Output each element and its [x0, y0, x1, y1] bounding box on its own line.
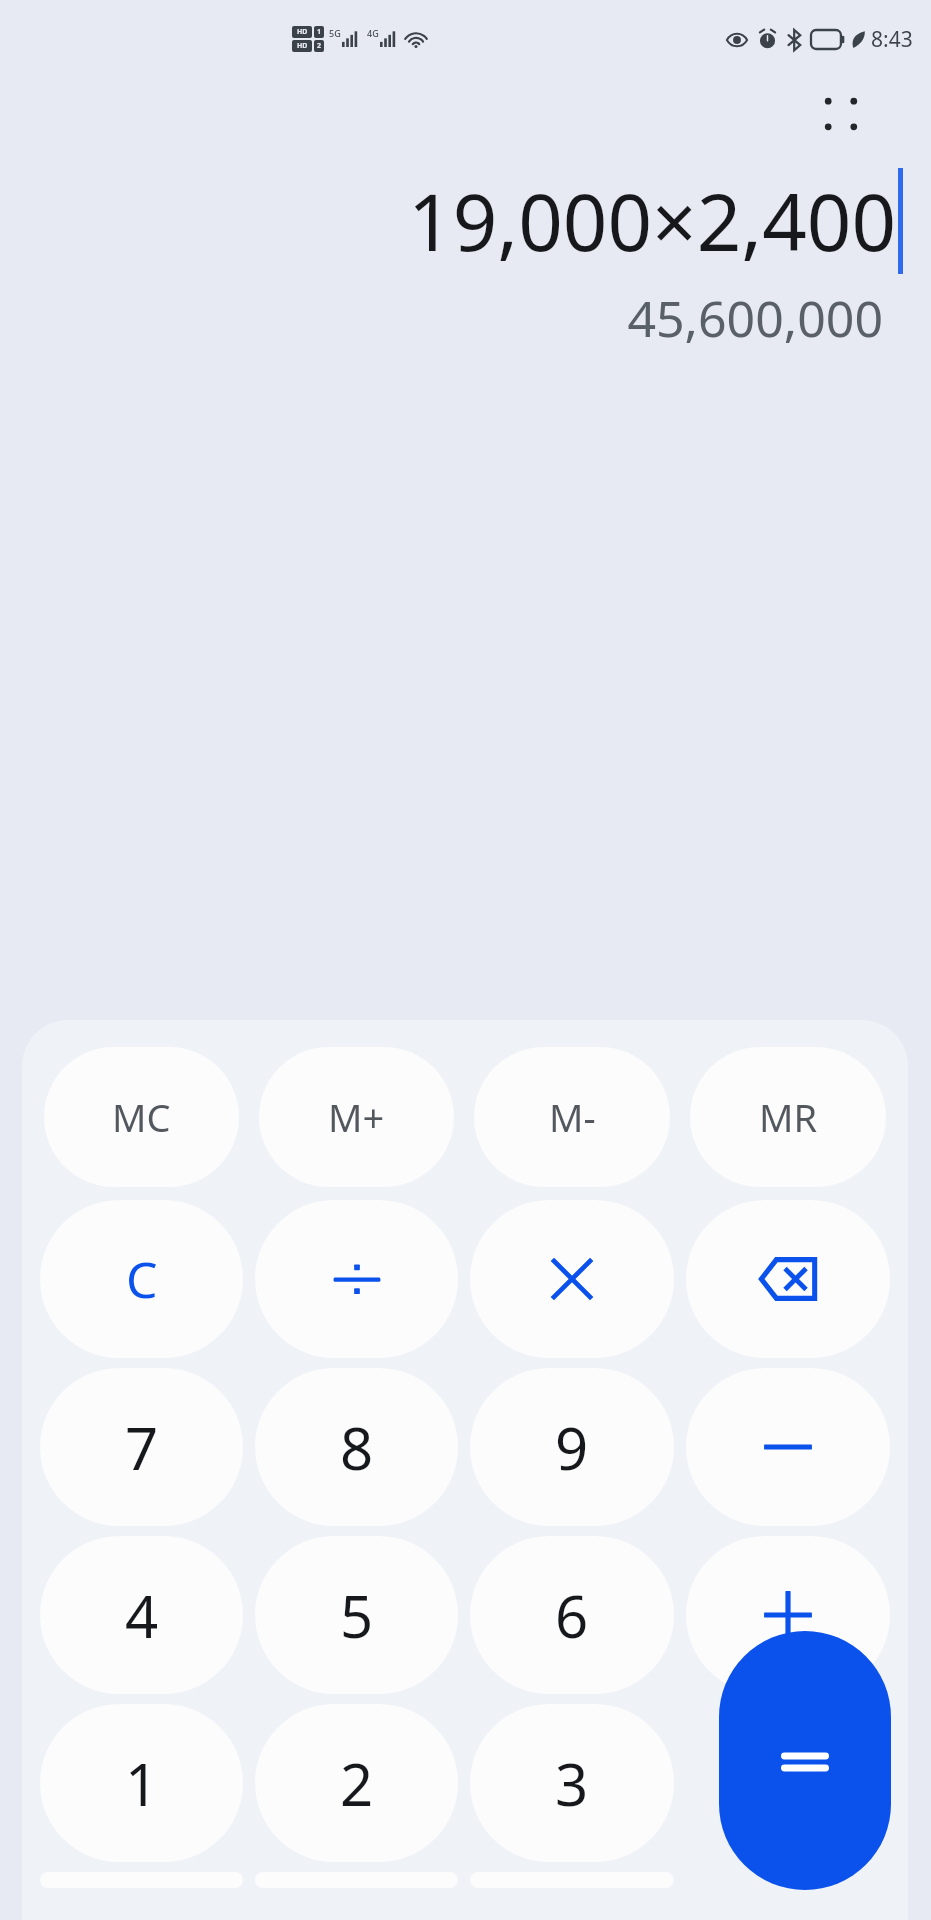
staticText: 8:43	[871, 25, 913, 54]
button[interactable]: 9	[470, 1368, 674, 1526]
staticText: 2	[317, 41, 322, 51]
staticText: 3	[555, 1744, 589, 1823]
staticText: M-	[549, 1091, 596, 1143]
button[interactable]: More options	[813, 86, 869, 142]
button[interactable]	[719, 1631, 891, 1890]
button[interactable]: Minus	[686, 1368, 890, 1526]
staticText: MC	[112, 1091, 171, 1143]
button[interactable]: MR	[690, 1047, 886, 1187]
button[interactable]: 7	[40, 1368, 243, 1526]
button[interactable]: Multiply	[470, 1200, 674, 1358]
staticText: 9	[555, 1408, 589, 1487]
staticText: M+	[328, 1091, 385, 1143]
staticText: 1	[317, 27, 322, 37]
button[interactable]: M-	[474, 1047, 670, 1187]
staticText: MR	[759, 1091, 818, 1143]
button[interactable]: Plus	[686, 1536, 890, 1694]
staticText: 6	[555, 1576, 589, 1655]
button[interactable]: M+	[259, 1047, 454, 1187]
button[interactable]: 8	[255, 1368, 458, 1526]
staticText: HD	[297, 27, 308, 37]
staticText: 4	[125, 1576, 159, 1655]
staticText: 8	[340, 1408, 374, 1487]
staticText: 19,000×2,400	[408, 168, 896, 274]
button[interactable]: Divide	[255, 1200, 458, 1358]
button[interactable]: Backspace	[686, 1200, 890, 1358]
staticText: 5G	[329, 27, 341, 39]
staticText: 4G	[367, 27, 379, 39]
staticText: 1	[125, 1744, 159, 1823]
button[interactable]: C	[40, 1200, 243, 1358]
staticText: 45,600,000	[627, 284, 883, 352]
button[interactable]: 2	[255, 1704, 458, 1862]
button[interactable]: 5	[255, 1536, 458, 1694]
staticText: 7	[125, 1408, 159, 1487]
button[interactable]: 1	[40, 1704, 243, 1862]
staticText: 5	[340, 1576, 374, 1655]
staticText: 2	[340, 1744, 374, 1823]
staticText: HD	[297, 41, 308, 51]
staticText: C	[126, 1245, 158, 1313]
button[interactable]: MC	[44, 1047, 239, 1187]
button[interactable]: 3	[470, 1704, 674, 1862]
button[interactable]: 6	[470, 1536, 674, 1694]
button[interactable]: 4	[40, 1536, 243, 1694]
